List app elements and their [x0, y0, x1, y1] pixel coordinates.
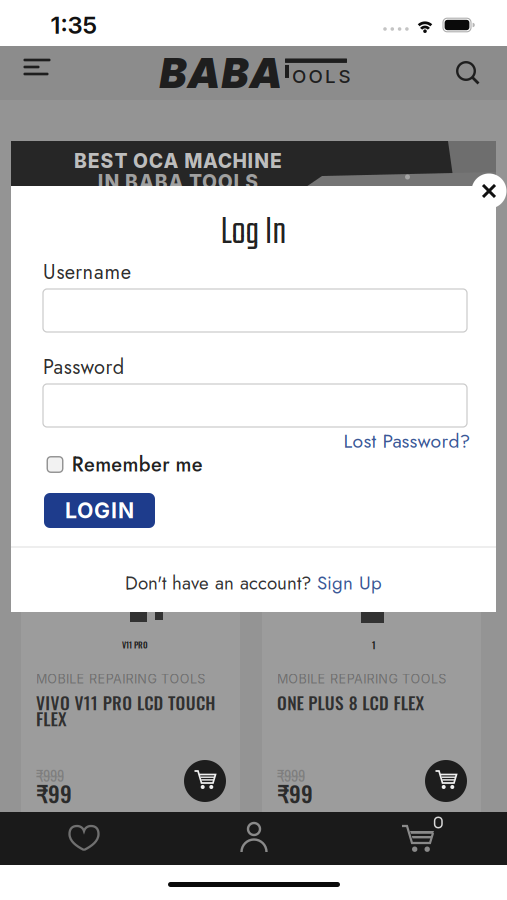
button[interactable]: Wishlist — [56, 815, 112, 863]
button[interactable]: LOGIN — [44, 493, 155, 528]
staticText: ₹99 — [36, 776, 72, 810]
button[interactable]: ONE PLUS 8 LCD FLEX — [262, 606, 481, 812]
staticText: Password — [43, 352, 124, 381]
button[interactable]: Add to cart — [184, 760, 226, 802]
staticText: VIVO V11 PRO LCD TOUCH — [36, 690, 215, 715]
staticText: ₹999 — [36, 764, 64, 786]
staticText: Username — [43, 257, 131, 286]
staticText: LOGIN — [65, 498, 134, 523]
button[interactable]: BABA TOOLS Home — [159, 48, 350, 98]
button[interactable]: Search — [446, 51, 490, 95]
staticText: Lost Password? — [343, 427, 470, 455]
button[interactable]: Add to cart — [425, 760, 467, 802]
staticText: MOBILE REPAIRING TOOLS — [36, 671, 205, 687]
button[interactable]: Account — [226, 816, 282, 864]
staticText: V11 PRO — [122, 639, 148, 651]
staticText: 1 — [372, 638, 376, 652]
button[interactable]: Menu — [8, 52, 52, 92]
staticText: Log In — [220, 203, 286, 263]
staticText: Sign Up — [317, 569, 382, 596]
staticText: ₹999 — [277, 764, 305, 786]
staticText: ONE PLUS 8 LCD FLEX — [277, 690, 424, 715]
staticText: Don't have an account? — [125, 569, 317, 596]
button[interactable]: Close — [471, 173, 506, 208]
staticText: ₹99 — [277, 776, 313, 810]
staticText: OOLS — [292, 65, 350, 88]
staticText: BABA — [159, 48, 282, 98]
staticText: BEST OCA MACHINE — [74, 149, 282, 173]
button[interactable]: Remember me — [47, 450, 203, 479]
button[interactable]: Lost Password? — [343, 427, 470, 455]
staticText: FLEX — [36, 706, 67, 731]
staticText: Remember me — [72, 450, 203, 479]
button[interactable]: VIVO V11 PRO LCD TOUCH FLEX — [21, 606, 240, 812]
staticText: 1:35 — [50, 10, 97, 39]
button[interactable]: Cart, 0 items — [394, 815, 454, 863]
staticText: MOBILE REPAIRING TOOLS — [277, 671, 446, 687]
staticText: IN BABA TOOLS — [98, 170, 258, 194]
button[interactable]: Sign Up — [317, 569, 382, 596]
